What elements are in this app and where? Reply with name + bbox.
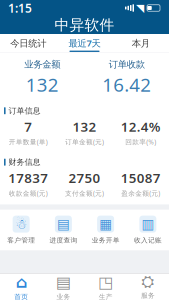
button[interactable]: ⛭: [127, 274, 169, 300]
button[interactable]: ⌂: [0, 274, 42, 300]
button[interactable]: ▤: [42, 274, 84, 300]
staticText: 15087: [121, 169, 161, 187]
staticText: 客户管理: [7, 236, 35, 244]
staticText: 最近7天: [68, 37, 100, 49]
staticText: 12.4%: [121, 118, 161, 135]
button[interactable]: ☃: [0, 210, 42, 250]
staticText: 订单金额(元): [65, 137, 104, 146]
staticText: ⛭: [141, 274, 154, 290]
staticText: 本月: [132, 38, 150, 49]
staticText: 订单信息: [9, 106, 41, 116]
staticText: 首页: [14, 293, 28, 300]
staticText: 132: [72, 118, 96, 135]
staticText: ◥: [136, 2, 144, 14]
staticText: 1:15: [8, 0, 32, 16]
staticText: 业务: [56, 293, 70, 300]
staticText: 收入记账: [134, 236, 162, 244]
staticText: 服务: [141, 291, 155, 300]
staticText: ☃: [15, 217, 27, 232]
staticText: 业务开单: [92, 236, 120, 244]
staticText: 16.42: [102, 72, 151, 97]
button[interactable]: ▤: [42, 210, 84, 250]
staticText: 生产: [99, 293, 113, 300]
button[interactable]: 本月: [113, 34, 169, 52]
staticText: 开单数量(单): [9, 137, 48, 146]
staticText: ▦: [99, 217, 112, 232]
staticText: ◳: [98, 273, 113, 291]
button[interactable]: 今日统计: [0, 34, 56, 52]
staticText: 进度查询: [49, 236, 77, 244]
staticText: 业务金额: [24, 59, 60, 70]
staticText: 财务信息: [9, 157, 41, 167]
staticText: 中异软件: [54, 16, 114, 34]
staticText: 盈余金额(元): [121, 189, 160, 198]
staticText: ⌂: [16, 273, 27, 291]
button[interactable]: ▥: [127, 210, 169, 250]
staticText: ▤: [57, 217, 70, 232]
button[interactable]: ◳: [84, 274, 127, 300]
staticText: 订单收款: [109, 59, 145, 70]
staticText: 17837: [8, 169, 48, 187]
staticText: 132: [26, 72, 59, 97]
staticText: 支付金额(元): [65, 189, 104, 198]
staticText: 收款金额(元): [9, 189, 48, 198]
staticText: ▥: [141, 217, 154, 232]
staticText: 2750: [68, 169, 100, 187]
button[interactable]: ▦: [84, 210, 127, 250]
staticText: 7: [24, 118, 32, 135]
staticText: 回款率(%): [125, 137, 156, 146]
staticText: ▤: [56, 273, 71, 291]
button[interactable]: 最近7天: [56, 34, 113, 52]
staticText: 今日统计: [10, 38, 46, 49]
